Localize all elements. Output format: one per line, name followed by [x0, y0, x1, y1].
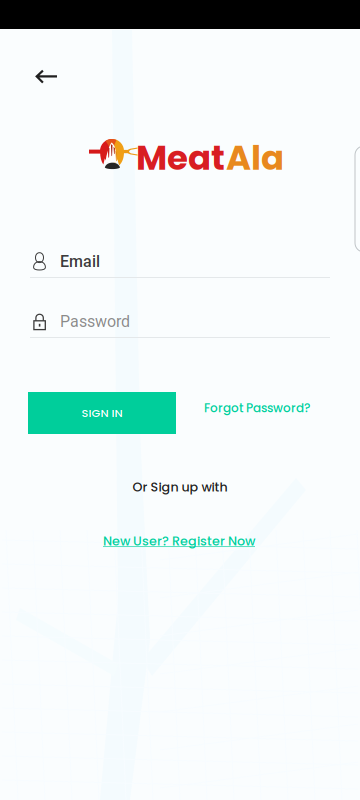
staticText: Ala [226, 134, 284, 182]
staticText: Password [60, 312, 130, 331]
staticText: Email [60, 252, 100, 271]
button[interactable]: Back [24, 55, 70, 99]
staticText: Meat [136, 134, 225, 182]
button[interactable]: Forgot Password? [197, 393, 317, 423]
staticText: Or Sign up with [132, 478, 227, 496]
staticText: New User? Register Now [103, 532, 255, 550]
staticText: SIGN IN [81, 405, 122, 421]
button[interactable]: SIGN IN [28, 392, 176, 434]
staticText: Forgot Password? [204, 400, 310, 416]
button[interactable]: New User? Register Now [89, 530, 269, 552]
